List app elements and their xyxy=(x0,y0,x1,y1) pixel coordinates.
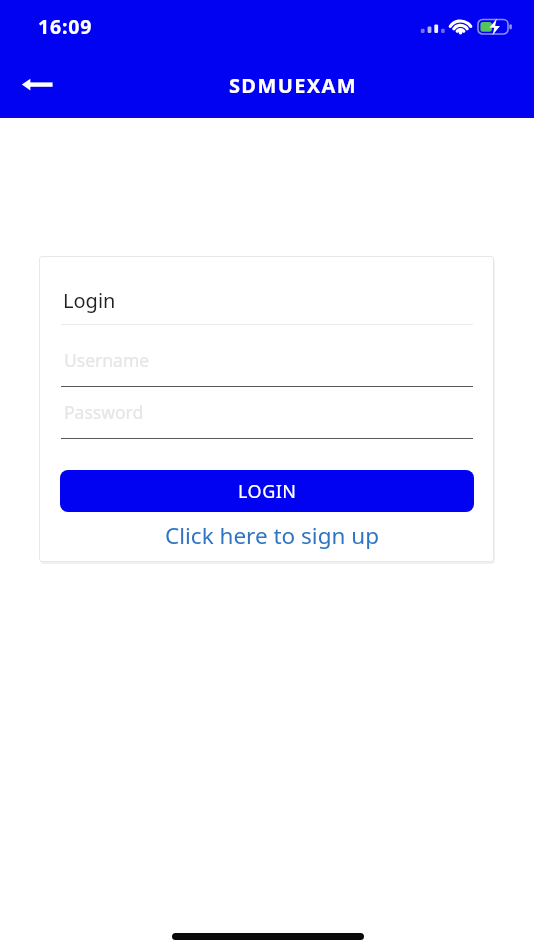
staticText: SDMUEXAM xyxy=(26,72,534,99)
staticText: Username xyxy=(64,348,150,372)
staticText: Login xyxy=(63,287,116,314)
staticText: Click here to sign up xyxy=(165,520,379,550)
button[interactable]: LOGIN xyxy=(60,470,474,512)
staticText: 16:09 xyxy=(38,13,93,40)
button[interactable] xyxy=(10,62,64,106)
staticText: Password xyxy=(64,400,144,424)
staticText: LOGIN xyxy=(238,479,297,504)
button[interactable]: Click here to sign up xyxy=(44,520,499,550)
button[interactable]: Username xyxy=(61,345,473,387)
button[interactable]: Password xyxy=(61,397,473,439)
